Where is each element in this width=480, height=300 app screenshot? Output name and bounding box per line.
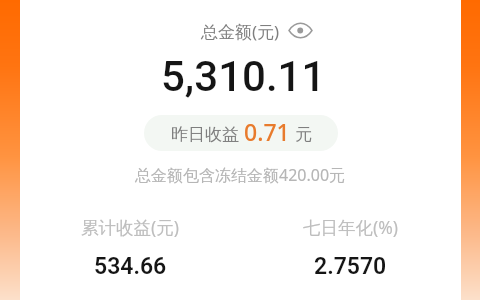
staticText: 534.66 <box>94 253 167 280</box>
staticText: 总金额包含冻结金额420.00元 <box>135 164 346 186</box>
staticText: 5,310.11 <box>161 52 326 101</box>
button[interactable]: 累计收益(元) <box>20 215 240 280</box>
button[interactable]: 七日年化(%) <box>240 215 461 280</box>
staticText: 七日年化(%) <box>303 215 399 239</box>
staticText: 累计收益(元) <box>81 215 179 239</box>
button[interactable]: Toggle amount visibility <box>289 19 312 42</box>
button[interactable]: 昨日收益 <box>144 115 338 151</box>
staticText: 昨日收益 <box>171 124 239 145</box>
staticText: 总金额(元) <box>201 20 280 43</box>
staticText: 元 <box>295 124 312 145</box>
staticText: 0.71 <box>244 116 290 147</box>
staticText: 2.7570 <box>314 253 387 280</box>
